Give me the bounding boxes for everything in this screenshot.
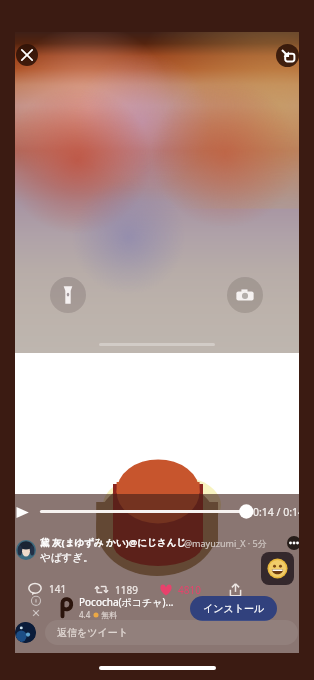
button[interactable]: Share: [228, 582, 243, 597]
staticText: 4810: [178, 583, 201, 597]
button[interactable]: Retweet: [94, 582, 138, 597]
button[interactable]: Like: [158, 582, 201, 598]
staticText: インストール: [203, 602, 265, 615]
button[interactable]: Flashlight: [50, 277, 86, 313]
staticText: 黛 灰(まゆずみ かい)@にじさんじ: [40, 536, 186, 549]
button[interactable]: Reply: [28, 582, 67, 596]
button[interactable]: Close: [16, 44, 38, 66]
button[interactable]: More options: [287, 536, 299, 550]
staticText: 1189: [115, 583, 138, 597]
button[interactable]: Picture in picture: [276, 44, 299, 67]
staticText: Pococha(ポコチャ)...: [79, 595, 174, 609]
button[interactable]: Profile photo: [16, 540, 36, 560]
button[interactable]: Your profile: [15, 622, 36, 643]
staticText: やばすぎ。: [40, 551, 94, 564]
button[interactable]: Pococha(ポコチャ)...: [15, 594, 299, 622]
button[interactable]: Camera: [227, 277, 263, 313]
staticText: 4.4: [79, 609, 93, 620]
staticText: 無料: [99, 609, 118, 620]
button[interactable]: Play: [15, 505, 30, 520]
staticText: 0:14 / 0:14: [253, 505, 299, 519]
staticText: 141: [49, 582, 67, 596]
button[interactable]: 返信をツイート: [45, 620, 298, 645]
button[interactable]: Emoji: [261, 552, 294, 585]
button[interactable]: インストール: [190, 596, 277, 621]
staticText: 返信をツイート: [57, 626, 128, 639]
staticText: @mayuzumi_X · 5分: [184, 537, 267, 549]
